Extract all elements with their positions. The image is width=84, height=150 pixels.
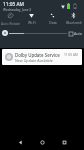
staticText: Auto Rotate — [1, 21, 20, 26]
staticText: Data — [49, 20, 57, 25]
button[interactable]: Home — [36, 136, 48, 148]
staticText: Auto — [74, 31, 82, 36]
button[interactable]: Bluetooth — [63, 12, 84, 26]
button[interactable]: Recents — [58, 136, 70, 148]
staticText: New Update Available — [15, 58, 53, 63]
button[interactable]: Data — [42, 12, 63, 26]
staticText: Wednesday, June 3 — [3, 8, 32, 12]
staticText: Dolby Update Service — [15, 52, 60, 58]
button[interactable]: Dolby Update Service — [2, 49, 82, 65]
button[interactable]: Battery saver — [73, 3, 77, 9]
staticText: Wi-Fi — [28, 20, 36, 25]
staticText: 11:05 AM — [64, 53, 78, 57]
button[interactable]: Wi-Fi — [21, 12, 42, 26]
button[interactable]: Auto — [69, 31, 82, 36]
staticText: 11:05 AM — [3, 1, 24, 8]
button[interactable]: Back — [14, 136, 26, 148]
staticText: Bluetooth — [66, 20, 82, 25]
button[interactable]: Auto Rotate — [0, 12, 21, 26]
